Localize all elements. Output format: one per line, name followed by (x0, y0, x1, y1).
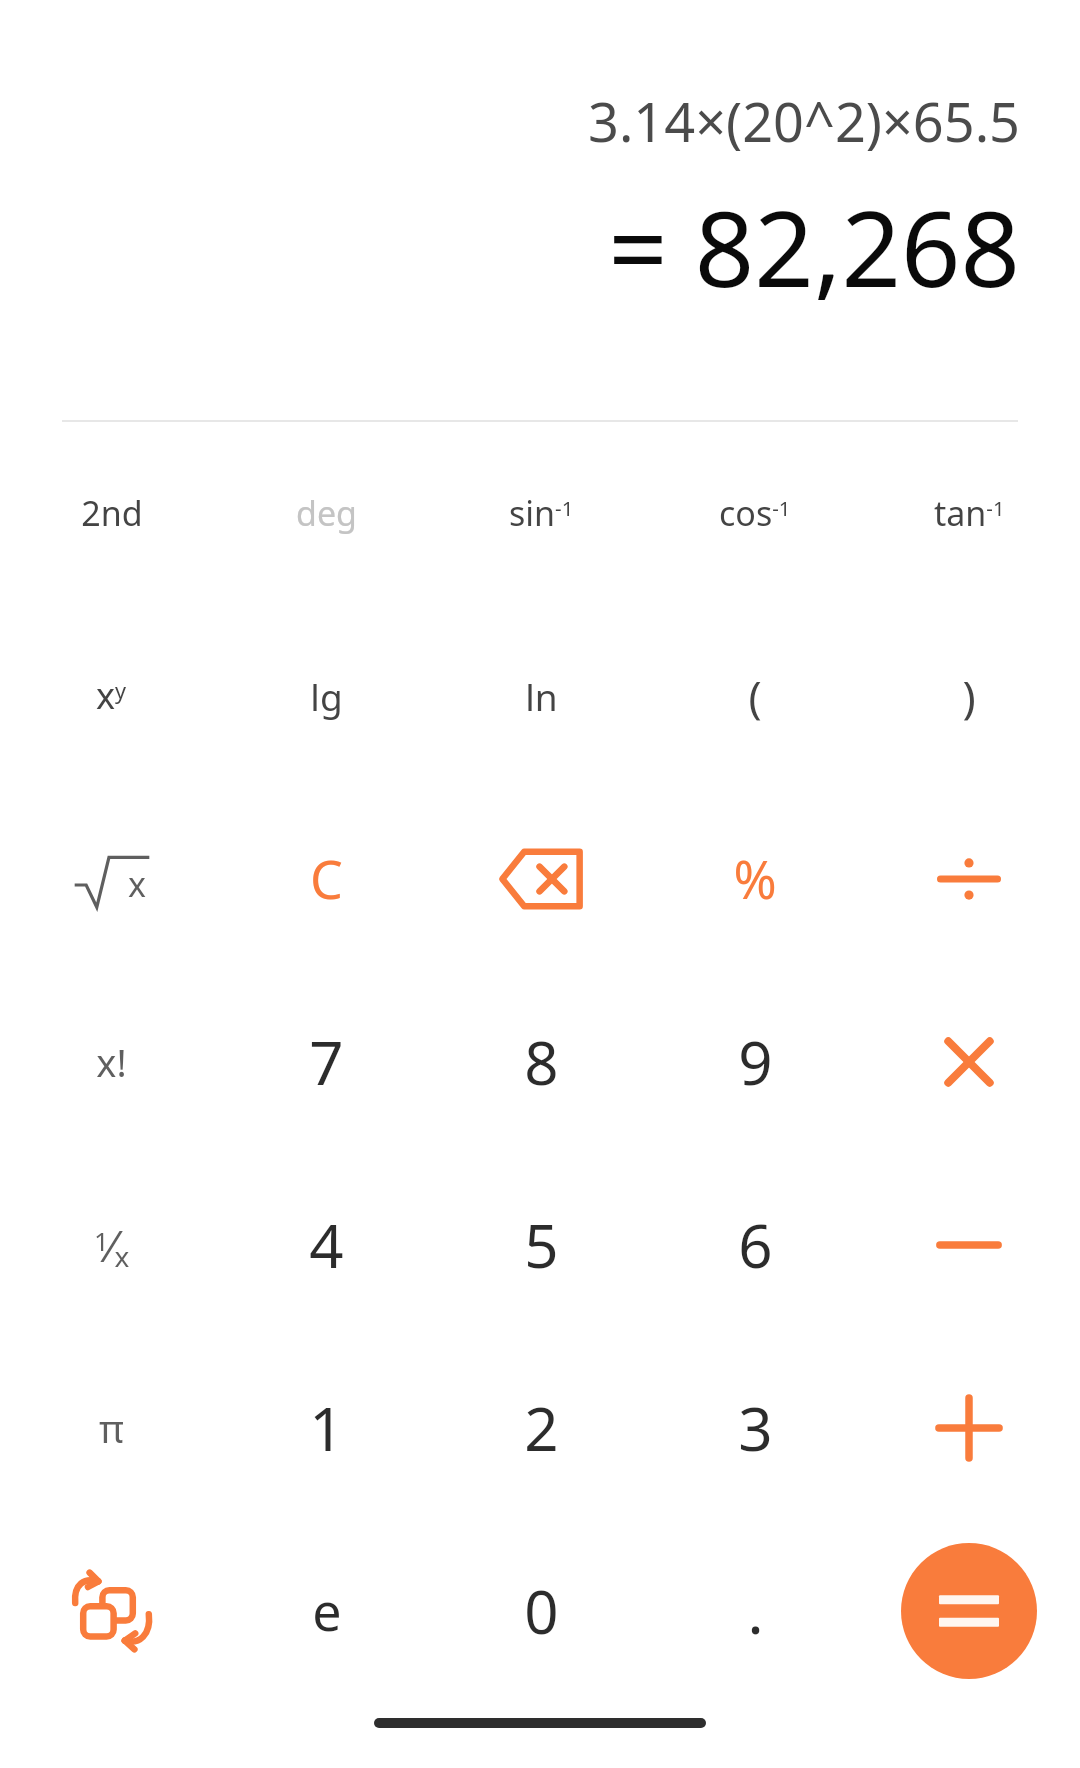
staticText: x! (96, 1036, 127, 1088)
button[interactable]: 4 (219, 1153, 434, 1336)
button[interactable]: Backspace (434, 787, 648, 970)
button[interactable]: ) (862, 604, 1076, 787)
button[interactable]: 1 (219, 1336, 434, 1519)
staticText: 0 (524, 1570, 559, 1652)
button[interactable]: deg (219, 422, 434, 604)
button[interactable]: x! (4, 970, 219, 1153)
staticText: 7 (309, 1021, 344, 1103)
staticText: e (312, 1575, 342, 1646)
button[interactable]: Unit converter (4, 1519, 219, 1702)
staticText: tan-1 (934, 490, 1005, 536)
staticText: ) (962, 666, 976, 726)
staticText: sin-1 (509, 490, 574, 536)
button[interactable]: . (648, 1519, 862, 1702)
button[interactable]: 9 (648, 970, 862, 1153)
staticText: 4 (309, 1204, 344, 1286)
staticText: = 82,268 (608, 176, 1020, 318)
button[interactable] (901, 1543, 1037, 1679)
button[interactable]: Equals (862, 1519, 1076, 1702)
staticText: 5 (524, 1204, 559, 1286)
staticText: 6 (738, 1204, 773, 1286)
staticText: 2nd (81, 490, 143, 536)
button[interactable]: 0 (434, 1519, 648, 1702)
button[interactable]: 3 (648, 1336, 862, 1519)
staticText: 1 (309, 1387, 344, 1469)
button[interactable]: cos-1 (648, 422, 862, 604)
button[interactable]: one over x (4, 1153, 219, 1336)
staticText: 8 (524, 1021, 559, 1103)
staticText: 3 (738, 1387, 773, 1469)
button[interactable]: 7 (219, 970, 434, 1153)
staticText: 3.14×(20^2)×65.5 (588, 84, 1020, 158)
button[interactable]: square root (4, 787, 219, 970)
button[interactable]: 8 (434, 970, 648, 1153)
button[interactable]: 2nd (4, 422, 219, 604)
button[interactable]: % (648, 787, 862, 970)
staticText: 2 (524, 1387, 559, 1469)
staticText: deg (296, 490, 357, 536)
button[interactable]: Minus (862, 1153, 1076, 1336)
staticText: cos-1 (719, 490, 791, 536)
staticText: 1⁄x (94, 1215, 130, 1275)
button[interactable]: 2 (434, 1336, 648, 1519)
staticText: % (733, 843, 777, 914)
button[interactable]: Plus (862, 1336, 1076, 1519)
staticText: π (99, 1402, 124, 1454)
staticText: ln (525, 671, 558, 721)
button[interactable]: tan-1 (862, 422, 1076, 604)
staticText: . (747, 1570, 764, 1652)
button[interactable]: ( (648, 604, 862, 787)
staticText: C (310, 843, 343, 914)
button[interactable]: xy (4, 604, 219, 787)
staticText: 9 (738, 1021, 773, 1103)
button[interactable]: lg (219, 604, 434, 787)
button[interactable]: Multiply (862, 970, 1076, 1153)
staticText: xy (96, 671, 127, 720)
staticText: x (128, 861, 146, 907)
button[interactable]: ln (434, 604, 648, 787)
staticText: ( (748, 666, 762, 726)
button[interactable]: 5 (434, 1153, 648, 1336)
button[interactable]: Divide (862, 787, 1076, 970)
button[interactable]: sin-1 (434, 422, 648, 604)
button[interactable]: π (4, 1336, 219, 1519)
staticText: lg (310, 671, 343, 721)
button[interactable]: 6 (648, 1153, 862, 1336)
button[interactable]: e (219, 1519, 434, 1702)
button[interactable]: C (219, 787, 434, 970)
